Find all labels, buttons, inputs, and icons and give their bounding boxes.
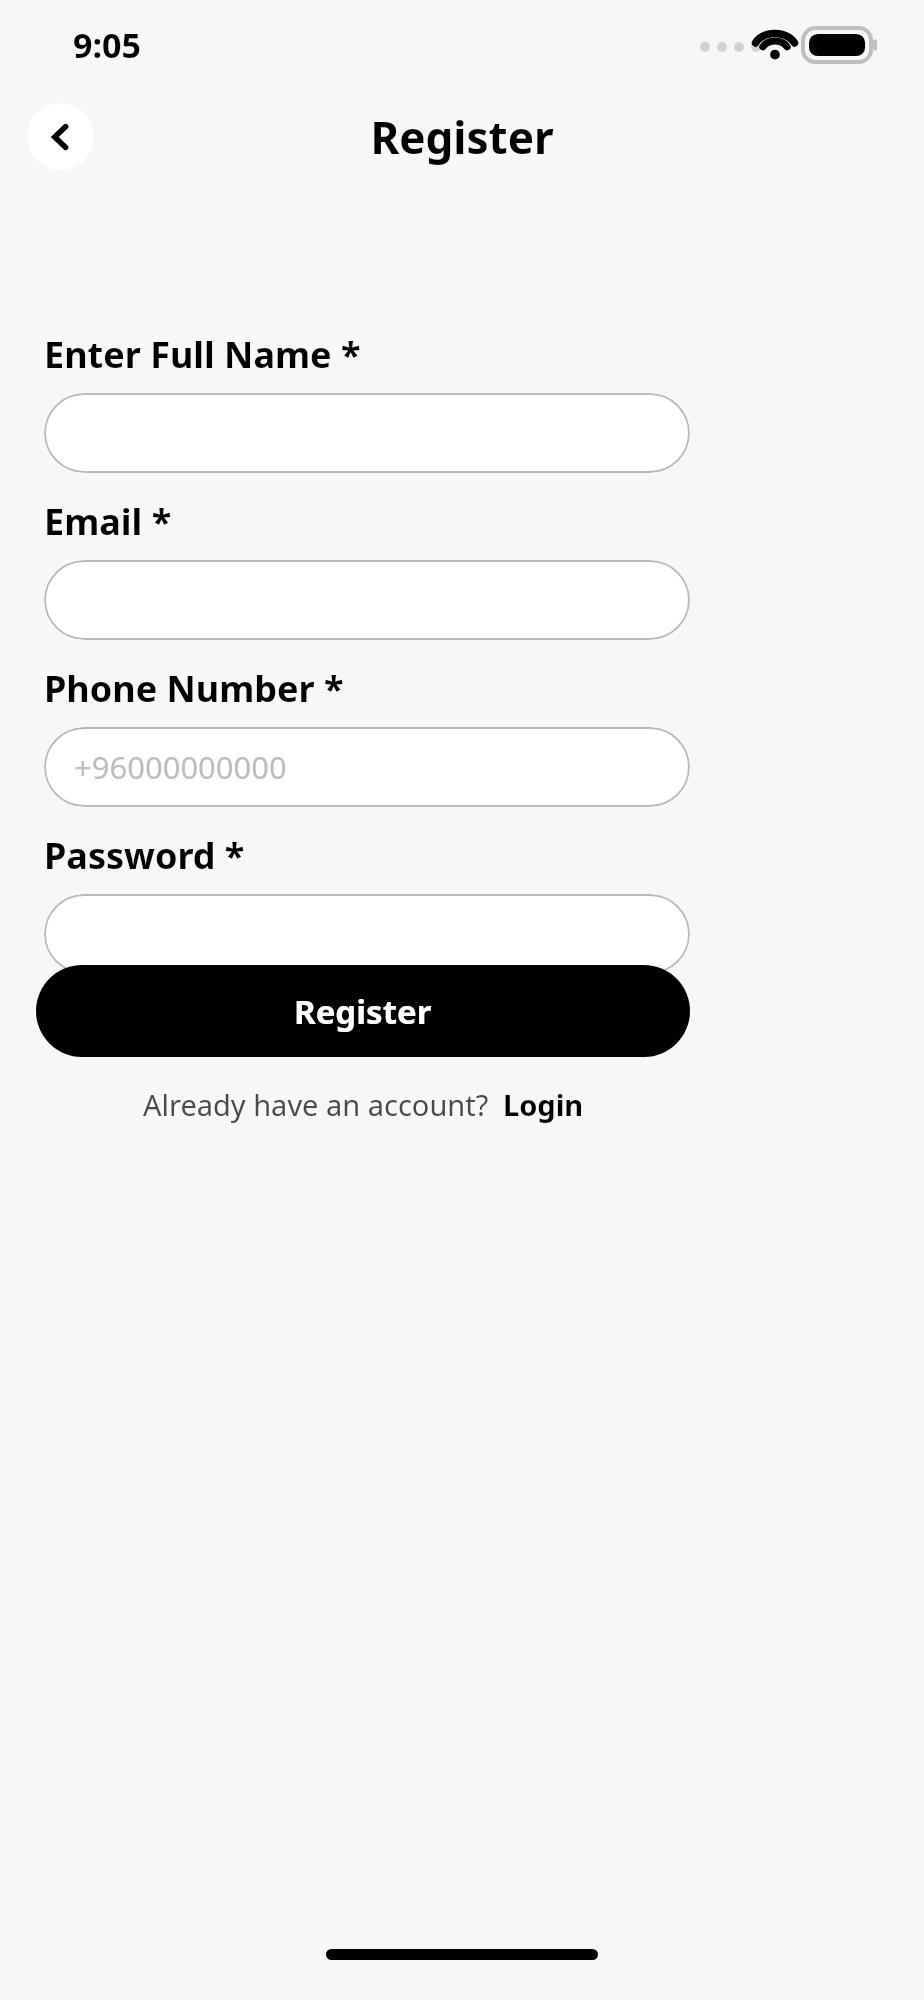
staticText: Login [503, 1085, 584, 1124]
button[interactable]: Back [27, 103, 94, 170]
button[interactable] [44, 393, 690, 473]
button[interactable]: Register [36, 965, 690, 1057]
staticText: Register [294, 989, 432, 1034]
button[interactable] [44, 560, 690, 640]
staticText: Already have an account? [143, 1085, 489, 1124]
staticText: Enter Full Name * [44, 330, 361, 379]
staticText: Email * [44, 497, 172, 546]
button[interactable]: +96000000000 [44, 727, 690, 807]
staticText: 9:05 [73, 22, 141, 68]
button[interactable] [44, 894, 690, 974]
button[interactable]: Login [503, 1085, 584, 1124]
staticText: Register [0, 107, 924, 167]
staticText: +96000000000 [74, 746, 287, 788]
staticText: Phone Number * [44, 664, 344, 713]
staticText: Password * [44, 831, 245, 880]
